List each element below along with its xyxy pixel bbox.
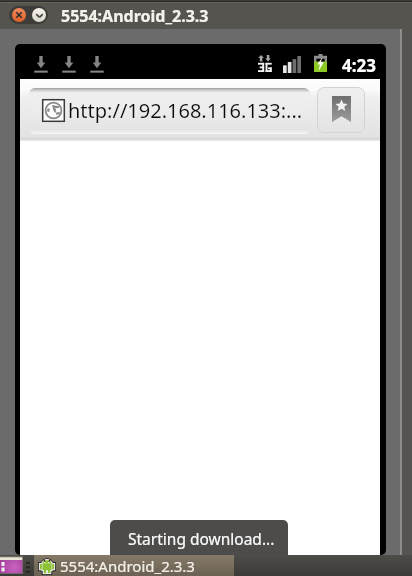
button[interactable]: Starting download... xyxy=(110,520,288,562)
staticText: 4:23 xyxy=(342,54,376,77)
staticText: 5554:Android_2.3.3 xyxy=(60,556,195,576)
button[interactable]: 5554:Android_2.3.3 xyxy=(34,555,234,576)
button[interactable]: Bookmarks xyxy=(317,87,365,133)
staticText: http://192.168.116.133:... xyxy=(68,97,303,124)
button[interactable]: Close window xyxy=(12,8,26,22)
button[interactable]: Workspace switcher xyxy=(0,556,23,574)
button[interactable]: Collapse window xyxy=(32,8,46,22)
staticText: Starting download... xyxy=(128,528,275,549)
button[interactable]: http://192.168.116.133:... xyxy=(29,88,310,134)
staticText: 5554:Android_2.3.3 xyxy=(61,5,209,27)
